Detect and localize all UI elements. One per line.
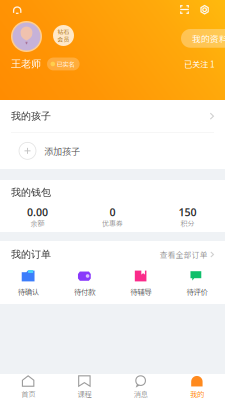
staticText: 我的钱包	[11, 186, 51, 199]
button[interactable]: 待确认	[0, 268, 56, 299]
button[interactable]: 消息	[112, 371, 169, 400]
button[interactable]: 课程	[56, 371, 112, 400]
button[interactable]: 查看全部订单	[160, 246, 214, 263]
staticText: 待付款	[74, 286, 95, 297]
staticText: 我的孩子	[11, 110, 51, 122]
staticText: 钻石	[57, 27, 69, 36]
button[interactable]: 0	[75, 205, 150, 228]
button[interactable]: 客服	[9, 2, 26, 18]
staticText: 0.00	[27, 205, 48, 219]
button[interactable]: 已关注 1	[184, 55, 225, 73]
button[interactable]: 待付款	[56, 268, 112, 299]
button[interactable]: 0.00	[0, 205, 75, 228]
button[interactable]: 我的	[169, 371, 225, 400]
button[interactable]: 待评价	[169, 268, 225, 299]
button[interactable]: 我的资料	[181, 29, 225, 48]
staticText: 待确认	[18, 286, 39, 297]
button[interactable]: 设置	[196, 1, 214, 19]
staticText: 已关注 1	[184, 58, 215, 70]
staticText: 会员	[57, 35, 69, 43]
staticText: 消息	[134, 388, 148, 399]
staticText: 我的	[190, 388, 204, 399]
staticText: 0	[109, 205, 115, 219]
button[interactable]: 添加孩子	[0, 133, 225, 169]
staticText: 150	[178, 205, 196, 219]
staticText: 已实名	[57, 59, 75, 69]
staticText: 我的订单	[11, 248, 51, 261]
button[interactable]: 扫一扫	[176, 1, 193, 18]
button[interactable]: 首页	[0, 371, 56, 400]
staticText: 优惠券	[102, 218, 123, 228]
staticText: 待评价	[186, 286, 207, 297]
staticText: 积分	[180, 218, 194, 228]
staticText: 查看全部订单	[160, 249, 208, 260]
staticText: 王老师	[11, 58, 41, 70]
staticText: 我的资料	[192, 32, 225, 45]
staticText: 待辅导	[130, 286, 151, 297]
button[interactable]: 待辅导	[112, 268, 169, 299]
button[interactable]: 150	[150, 205, 225, 228]
staticText: 余额	[30, 218, 44, 228]
staticText: 添加孩子	[44, 144, 80, 157]
staticText: 首页	[21, 388, 35, 399]
staticText: 课程	[77, 388, 91, 399]
button[interactable]: 我的孩子	[202, 109, 214, 124]
